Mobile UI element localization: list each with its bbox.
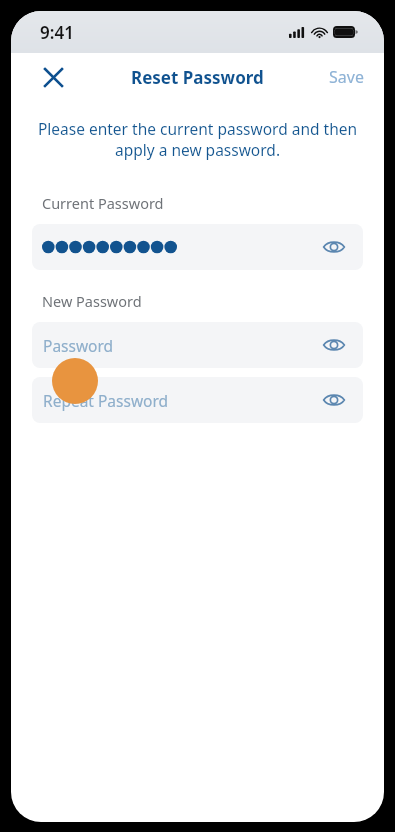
button[interactable]: Password bbox=[32, 322, 363, 368]
staticText: Save bbox=[329, 66, 364, 88]
staticText: 9:41 bbox=[40, 21, 74, 44]
button[interactable]: Show password bbox=[319, 330, 349, 360]
button[interactable]: Show password bbox=[319, 232, 349, 262]
button[interactable]: Repeat Password bbox=[32, 377, 363, 423]
staticText: Password bbox=[43, 335, 114, 356]
staticText: Please enter the current password and th… bbox=[33, 118, 362, 161]
button[interactable]: Save bbox=[309, 58, 384, 96]
button[interactable]: Show password bbox=[32, 224, 363, 270]
staticText: Current Password bbox=[42, 193, 164, 213]
staticText: Repeat Password bbox=[43, 390, 169, 411]
button[interactable]: Close bbox=[35, 59, 71, 95]
staticText: New Password bbox=[42, 291, 142, 311]
staticText: Reset Password bbox=[131, 66, 264, 89]
button[interactable]: Show password bbox=[319, 385, 349, 415]
